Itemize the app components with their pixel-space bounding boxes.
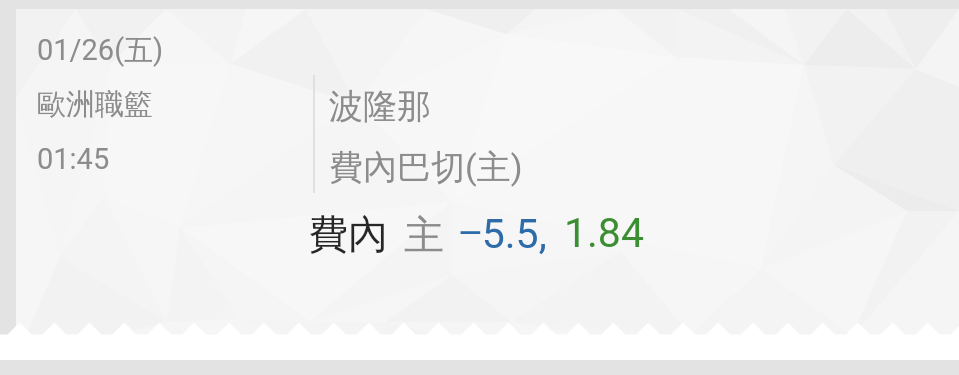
staticText: 歐洲職籃 (37, 86, 153, 123)
staticText: 1.84 (564, 209, 644, 257)
staticText: 費內 (308, 209, 388, 259)
button[interactable]: 01/26(五) (16, 9, 959, 360)
staticText: −5.5, (459, 200, 547, 259)
staticText: 波隆那 (329, 85, 431, 128)
staticText: 費內巴切(主) (329, 146, 523, 189)
staticText: 主 (404, 210, 444, 260)
staticText: 01:45 (37, 142, 110, 176)
staticText: 01/26(五) (37, 32, 164, 69)
